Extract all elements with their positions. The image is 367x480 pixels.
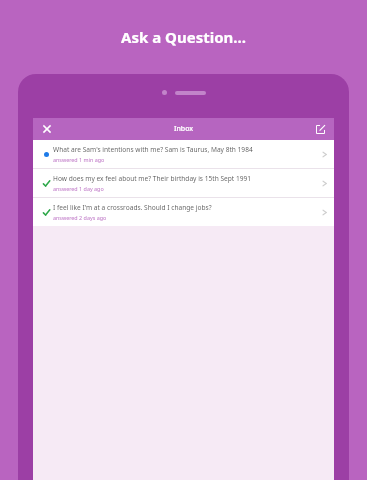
staticText: I feel like I'm at a crossroads. Should … [53,203,212,212]
button[interactable]: How does my ex feel about me? Their birt… [33,169,334,198]
staticText: Inbox [174,124,194,134]
staticText: Ask a Question... [121,27,246,47]
button[interactable]: What are Sam's intentions with me? Sam i… [33,140,334,169]
staticText: What are Sam's intentions with me? Sam i… [53,145,253,154]
button[interactable]: I feel like I'm at a crossroads. Should … [33,198,334,226]
button[interactable]: Compose [306,118,334,140]
button[interactable]: Close [33,118,61,140]
staticText: How does my ex feel about me? Their birt… [53,174,252,183]
staticText: answered 2 days ago [53,214,107,221]
staticText: answered 1 min ago [53,156,105,163]
staticText: answered 1 day ago [53,185,104,192]
